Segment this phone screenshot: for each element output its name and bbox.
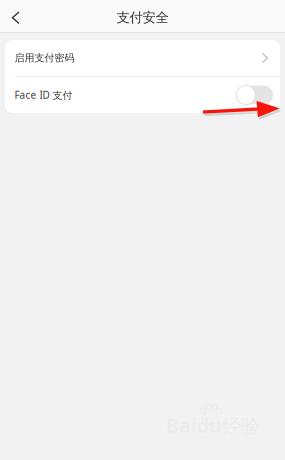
button[interactable]: 启用支付密码 xyxy=(5,40,280,76)
staticText: 支付安全 xyxy=(116,9,168,26)
button[interactable]: Back xyxy=(0,1,29,32)
button[interactable]: Face ID 支付 xyxy=(5,77,280,113)
staticText: Face ID 支付 xyxy=(14,88,72,102)
staticText: 启用支付密码 xyxy=(14,52,74,64)
